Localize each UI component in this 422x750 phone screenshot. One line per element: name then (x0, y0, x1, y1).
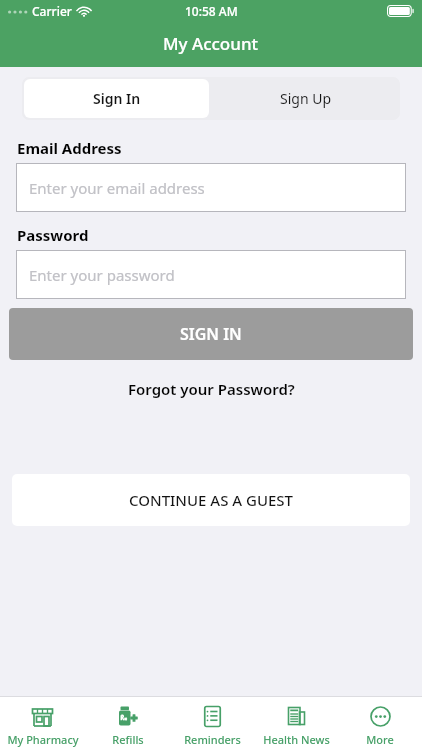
staticText: Sign Up (280, 89, 332, 108)
button[interactable]: CONTINUE AS A GUEST (12, 474, 410, 526)
staticText: Forgot your Password? (128, 379, 295, 399)
staticText: My Account (163, 32, 259, 55)
staticText: My Pharmacy (7, 732, 79, 747)
staticText: Enter your email address (29, 178, 205, 198)
button[interactable]: Health News (254, 700, 338, 747)
button[interactable]: Reminders (170, 700, 254, 747)
staticText: Refills (112, 732, 144, 747)
button[interactable]: My Pharmacy (0, 700, 85, 747)
staticText: More (366, 732, 394, 747)
button[interactable]: Enter your email address (16, 163, 406, 212)
staticText: Password (17, 225, 89, 245)
staticText: Carrier (32, 3, 72, 19)
button[interactable]: More (338, 700, 422, 747)
staticText: Email Address (17, 138, 122, 158)
button[interactable]: Forgot your Password? (118, 375, 305, 403)
staticText: SIGN IN (180, 323, 242, 345)
button[interactable]: Enter your password (16, 250, 406, 299)
button[interactable]: Refills (85, 700, 170, 747)
button[interactable]: Sign In (24, 79, 209, 118)
staticText: Sign In (93, 89, 141, 108)
staticText: 10:58 AM (185, 3, 238, 19)
staticText: Health News (263, 732, 330, 747)
staticText: CONTINUE AS A GUEST (129, 490, 294, 510)
button[interactable]: SIGN IN (9, 308, 413, 360)
button[interactable]: Sign Up (211, 77, 400, 120)
staticText: Enter your password (29, 265, 175, 285)
staticText: Reminders (184, 732, 241, 747)
